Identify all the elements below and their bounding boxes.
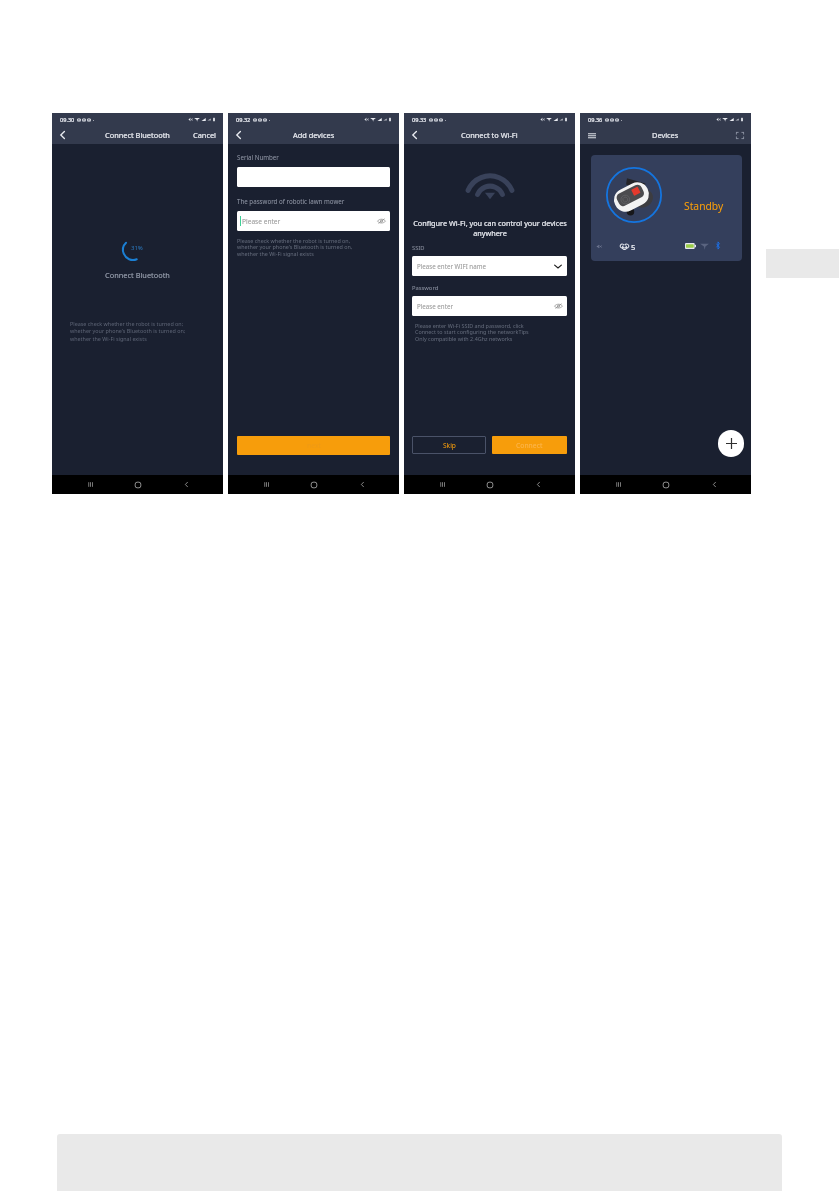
staticText: 09.33 [412,116,427,124]
button[interactable]: Back [175,475,197,494]
staticText: SSID [412,244,425,252]
staticText: Serial Number [237,153,279,161]
button[interactable]: Home [127,475,149,494]
staticText: Configure Wi-Fi, you can control your de… [410,218,570,238]
staticText: 31% [131,244,143,252]
button[interactable]: Back [405,126,423,144]
staticText: Please enter [417,302,453,310]
button[interactable] [237,167,390,187]
button[interactable]: Back [703,475,725,494]
staticText: Connect to Wi-Fi [461,130,518,140]
staticText: Connect [516,441,543,450]
button[interactable]: Connect [492,436,567,454]
button[interactable]: Home [655,475,677,494]
button[interactable]: Home [303,475,325,494]
button[interactable]: Recent apps [79,475,101,494]
staticText: Please check whether the robot is turned… [237,237,353,258]
button[interactable]: Recent apps [431,475,453,494]
button[interactable]: Please enter WIFI name [412,256,567,276]
staticText: 09.36 [588,116,603,124]
staticText: Add devices [293,130,335,140]
staticText: 09.32 [236,116,251,124]
button[interactable]: Recent apps [607,475,629,494]
staticText: Devices [652,130,679,140]
staticText: Please enter [242,217,281,226]
button[interactable]: Back [53,126,71,144]
staticText: Cancel [193,130,217,140]
button[interactable]: Menu [583,126,601,144]
button[interactable]: Back [527,475,549,494]
button[interactable]: Standby [591,155,742,261]
button[interactable]: Please enter [237,211,390,231]
staticText: 09.30 [60,116,75,124]
button[interactable]: Add device [718,430,744,457]
staticText: Connect Bluetooth [105,130,170,140]
button[interactable]: Please enter [412,296,567,316]
staticText: 5 [631,242,636,252]
staticText: Skip [443,441,456,450]
button[interactable]: Home [479,475,501,494]
staticText: The password of robotic lawn mower [237,197,345,205]
staticText: Standby [684,199,724,213]
button[interactable]: Skip [412,436,486,454]
staticText: Please enter Wi-Fi SSID and password, cl… [415,322,529,343]
staticText: Please check whether the robot is turned… [70,320,186,343]
staticText: Password [412,284,439,292]
button[interactable]: Recent apps [255,475,277,494]
button[interactable]: Back [351,475,373,494]
button[interactable]: Full screen [731,126,749,144]
button[interactable]: Cancel [188,126,222,144]
staticText: Connect Bluetooth [52,270,223,280]
staticText: Please enter WIFI name [417,262,486,270]
button[interactable]: Back [229,126,247,144]
